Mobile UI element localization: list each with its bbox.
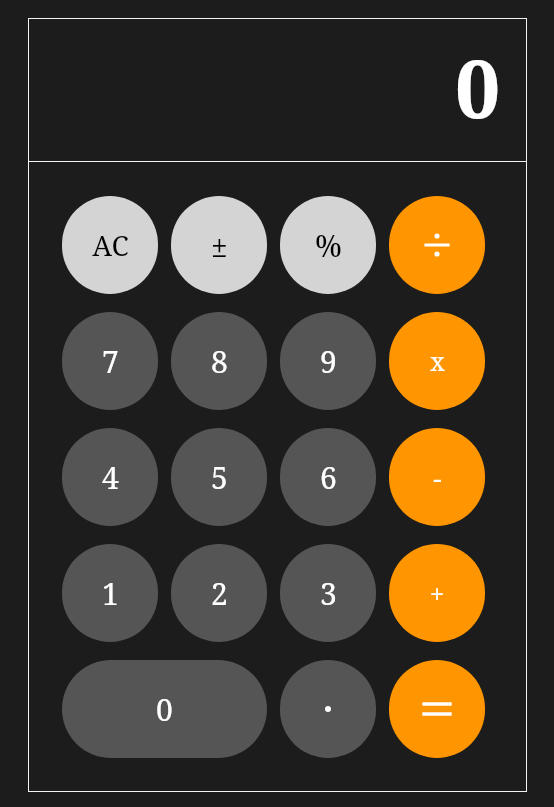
staticText: 0 — [156, 689, 173, 730]
staticText: 1 — [102, 573, 119, 614]
button[interactable]: ± — [171, 196, 267, 294]
staticText: - — [433, 459, 442, 496]
button[interactable]: 2 — [171, 544, 267, 642]
button[interactable]: Add — [389, 544, 485, 642]
staticText: 8 — [211, 341, 228, 382]
staticText: 5 — [211, 457, 228, 498]
button[interactable]: Decimal point — [280, 660, 376, 758]
button[interactable]: Divide — [389, 196, 485, 294]
staticText: AC — [92, 226, 129, 264]
staticText: 9 — [320, 341, 337, 382]
button[interactable]: 6 — [280, 428, 376, 526]
staticText: % — [315, 225, 342, 266]
button[interactable]: Subtract — [389, 428, 485, 526]
button[interactable]: 1 — [62, 544, 158, 642]
button[interactable]: 4 — [62, 428, 158, 526]
button[interactable]: 5 — [171, 428, 267, 526]
button[interactable]: 8 — [171, 312, 267, 410]
button[interactable]: AC — [62, 196, 158, 294]
staticText: 3 — [320, 573, 337, 614]
staticText: ± — [211, 225, 228, 266]
button[interactable]: Equals — [389, 660, 485, 758]
staticText: 7 — [102, 341, 119, 382]
staticText: 4 — [102, 457, 119, 498]
staticText: 2 — [211, 573, 228, 614]
staticText: x — [430, 344, 445, 378]
button[interactable]: % — [280, 196, 376, 294]
button[interactable]: 3 — [280, 544, 376, 642]
staticText: 6 — [320, 457, 337, 498]
button[interactable]: Multiply — [389, 312, 485, 410]
button[interactable]: 7 — [62, 312, 158, 410]
button[interactable]: 9 — [280, 312, 376, 410]
staticText: + — [429, 575, 445, 612]
button[interactable]: 0 — [62, 660, 267, 758]
staticText: 0 — [455, 32, 501, 141]
